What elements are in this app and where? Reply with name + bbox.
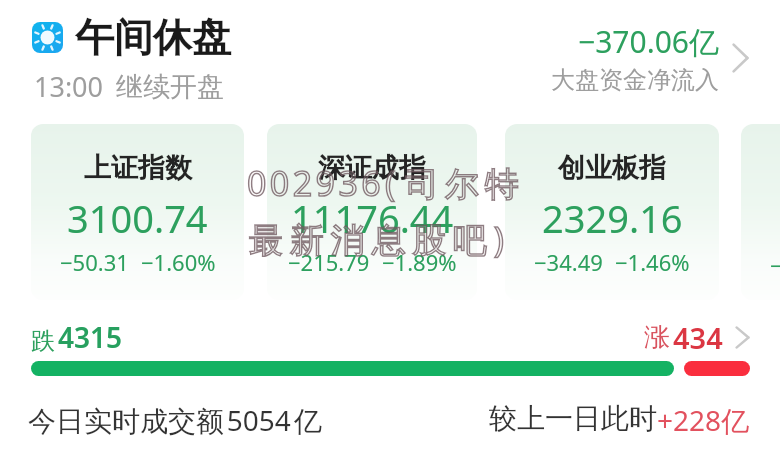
staticText: −1.60% [141, 247, 216, 277]
staticText: 涨 [644, 321, 670, 354]
staticText: 司尔特 [402, 163, 522, 206]
staticText: −50.31 [60, 247, 129, 277]
staticText: −1.89% [382, 247, 457, 277]
staticText: −10.12 [770, 250, 780, 280]
staticText: −370.06亿 [578, 21, 719, 62]
staticText: 跌 [31, 326, 55, 356]
staticText: 2329.16 [542, 192, 683, 244]
button[interactable]: −370.06亿 [551, 21, 719, 95]
button[interactable]: 科创50 [741, 124, 780, 300]
button[interactable]: 上证指数 [31, 124, 244, 300]
staticText: −1.46% [615, 247, 690, 277]
staticText: +228亿 [657, 401, 750, 439]
staticText: 较上一日此时 [489, 401, 657, 436]
staticText: 3100.74 [67, 192, 208, 244]
staticText: ( [385, 160, 402, 206]
button[interactable]: 跌 [31, 318, 123, 356]
button[interactable]: 涨 [644, 318, 749, 357]
staticText: 深证成指 [318, 151, 426, 185]
staticText: 午间休盘 [75, 13, 231, 62]
staticText: 最新消息股吧) [249, 216, 511, 262]
button[interactable]: Midday break [32, 22, 63, 53]
staticText: 434 [673, 318, 723, 357]
staticText: 002936 [247, 160, 385, 206]
staticText: 大盘资金净流入 [551, 65, 719, 95]
staticText: 11176.44 [291, 192, 454, 244]
staticText: −215.79 [288, 247, 370, 277]
staticText: 司尔特 [402, 163, 522, 206]
button[interactable]: 深证成指 [267, 124, 477, 300]
staticText: −34.49 [534, 247, 603, 277]
button[interactable]: More up-down stats [736, 327, 749, 348]
staticText: 4315 [58, 318, 123, 356]
button[interactable]: More capital flow [733, 44, 748, 72]
staticText: 最新消息股吧) [249, 216, 511, 262]
button[interactable]: 创业板指 [505, 124, 719, 300]
staticText: ( [385, 160, 402, 206]
staticText: 上证指数 [84, 151, 192, 185]
staticText: 今日实时成交额 5054 亿 [28, 401, 322, 439]
staticText: 002936 [247, 160, 385, 206]
staticText: 13:00 [34, 68, 104, 105]
staticText: 继续开盘 [116, 70, 224, 104]
staticText: 创业板指 [558, 151, 666, 185]
